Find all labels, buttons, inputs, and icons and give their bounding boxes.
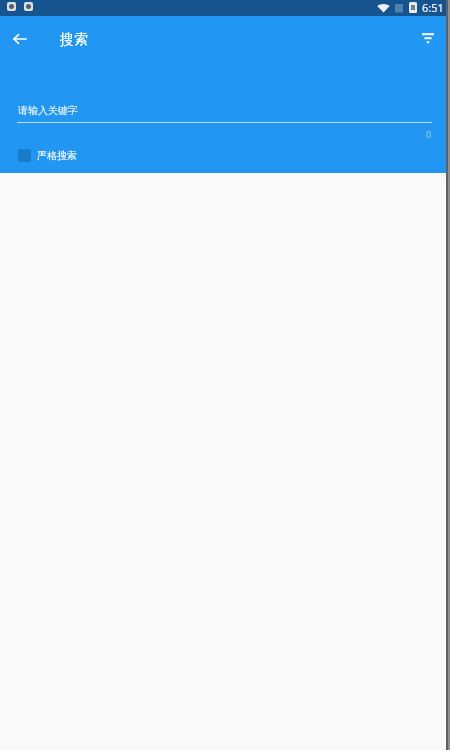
button[interactable]: Back xyxy=(0,16,39,64)
staticText: 6:51 xyxy=(422,0,444,15)
staticText: 严格搜索 xyxy=(37,149,77,162)
staticText: 搜索 xyxy=(60,31,88,49)
staticText: 请输入关键字 xyxy=(18,104,78,117)
button[interactable]: 严格搜索 xyxy=(14,149,77,162)
button[interactable]: Filter xyxy=(406,16,450,64)
staticText: 0 xyxy=(426,128,432,140)
